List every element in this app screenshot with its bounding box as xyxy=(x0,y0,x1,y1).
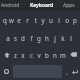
button[interactable]: r xyxy=(23,11,31,29)
button[interactable]: v xyxy=(35,46,43,63)
staticText: w xyxy=(9,16,14,24)
button[interactable]: Shift xyxy=(1,46,12,63)
button[interactable]: d xyxy=(19,29,27,46)
button[interactable]: n xyxy=(51,46,59,63)
staticText: n xyxy=(53,51,57,59)
staticText: b xyxy=(45,51,49,59)
button[interactable]: e xyxy=(15,11,23,29)
staticText: o xyxy=(65,16,69,24)
staticText: m xyxy=(60,51,66,59)
staticText: . xyxy=(66,68,68,76)
staticText: x xyxy=(21,51,25,59)
staticText: h xyxy=(45,34,49,42)
button[interactable]: t xyxy=(31,11,39,29)
staticText: s xyxy=(14,34,17,42)
staticText: Apps xyxy=(63,2,75,9)
staticText: q xyxy=(3,16,7,24)
staticText: a xyxy=(6,34,10,42)
button[interactable]: c xyxy=(27,46,35,63)
staticText: d xyxy=(21,34,25,42)
staticText: g xyxy=(37,34,41,42)
button[interactable]: a xyxy=(4,29,11,46)
button[interactable]: q xyxy=(1,11,8,29)
staticText: i xyxy=(58,16,60,24)
button[interactable]: m xyxy=(59,46,67,63)
button[interactable]: k xyxy=(59,29,67,46)
staticText: j xyxy=(54,34,56,42)
staticText: e xyxy=(17,16,21,24)
button[interactable]: w xyxy=(8,11,15,29)
button[interactable]: y xyxy=(39,11,47,29)
staticText: z xyxy=(14,51,17,59)
button[interactable]: Android xyxy=(0,0,21,11)
button[interactable]: l xyxy=(67,29,75,46)
button[interactable]: o xyxy=(63,11,71,29)
button[interactable]: . xyxy=(63,63,71,80)
button[interactable]: b xyxy=(43,46,51,63)
staticText: f xyxy=(30,34,33,42)
staticText: v xyxy=(37,51,41,59)
button[interactable]: f xyxy=(27,29,35,46)
button[interactable]: Keyboard xyxy=(29,0,55,11)
button[interactable]: Emoji xyxy=(1,63,12,80)
button[interactable]: Backspace xyxy=(67,46,79,63)
staticText: u xyxy=(49,16,53,24)
button[interactable]: u xyxy=(47,11,55,29)
staticText: p xyxy=(73,16,77,24)
staticText: r xyxy=(26,16,29,24)
staticText: y xyxy=(41,16,45,24)
button[interactable]: z xyxy=(12,46,19,63)
button[interactable]: s xyxy=(11,29,19,46)
button[interactable]: x xyxy=(19,46,27,63)
staticText: Keyboard xyxy=(30,2,54,9)
staticText: c xyxy=(30,51,33,59)
button[interactable]: p xyxy=(71,11,79,29)
button[interactable]: h xyxy=(43,29,51,46)
button[interactable]: Apps xyxy=(62,0,80,11)
staticText: t xyxy=(34,16,37,24)
staticText: k xyxy=(61,34,65,42)
staticText: Android xyxy=(1,2,20,9)
button[interactable]: j xyxy=(51,29,59,46)
button[interactable]: g xyxy=(35,29,43,46)
button[interactable]: i xyxy=(55,11,63,29)
staticText: l xyxy=(70,34,72,42)
button[interactable]: Enter xyxy=(71,63,79,80)
